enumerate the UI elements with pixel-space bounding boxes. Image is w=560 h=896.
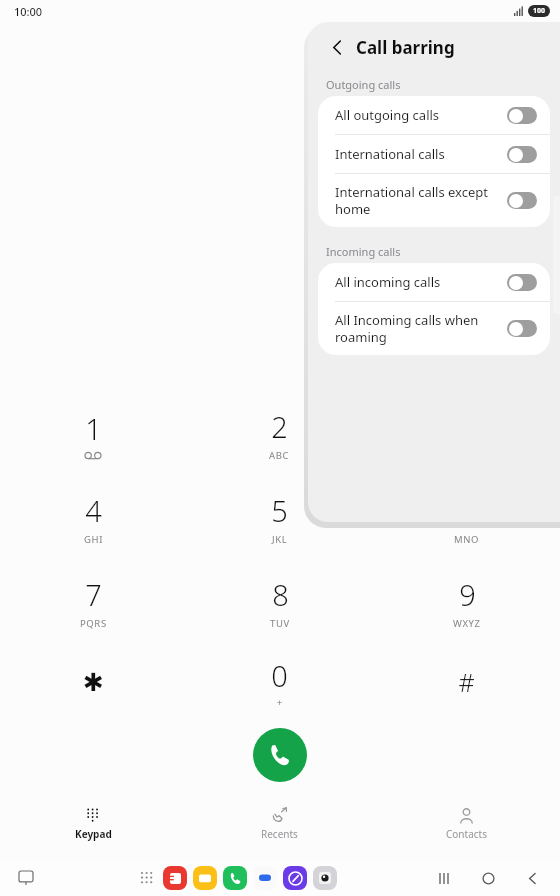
button[interactable]: Back — [510, 861, 554, 895]
button[interactable]: 8 — [186, 560, 373, 644]
button[interactable]: Recents — [186, 804, 373, 844]
button[interactable]: Toggle — [507, 107, 537, 124]
button[interactable]: Toggle — [507, 320, 537, 337]
button[interactable]: 4 — [0, 476, 186, 560]
staticText: + — [277, 696, 283, 708]
staticText: Incoming calls — [326, 244, 401, 259]
staticText: ABC — [269, 449, 290, 462]
button[interactable]: App — [163, 866, 187, 890]
staticText: 4 — [85, 491, 102, 530]
button[interactable]: All outgoing calls — [318, 96, 550, 134]
staticText: All incoming calls — [335, 273, 499, 291]
staticText: Contacts — [446, 827, 487, 841]
button[interactable]: Contacts — [373, 804, 560, 844]
button[interactable]: App — [283, 866, 307, 890]
staticText: Call barring — [356, 36, 455, 59]
staticText: Recents — [261, 827, 298, 841]
staticText: 6 — [459, 491, 476, 530]
button[interactable]: 6 — [373, 476, 560, 560]
staticText: WXYZ — [453, 617, 481, 630]
button[interactable]: Toggle — [507, 146, 537, 163]
staticText: ✱ — [83, 668, 104, 697]
staticText: International calls except home — [335, 183, 499, 218]
staticText: All Incoming calls when roaming — [335, 311, 499, 346]
staticText: MNO — [454, 533, 480, 546]
staticText: TUV — [270, 617, 290, 630]
staticText: GHI — [84, 533, 103, 546]
button[interactable]: ✱ — [0, 644, 186, 720]
button[interactable]: Toggle — [507, 274, 537, 291]
button[interactable]: Keypad — [0, 804, 186, 844]
staticText: 0 — [271, 656, 288, 695]
button[interactable]: International calls — [318, 135, 550, 173]
button[interactable]: 7 — [0, 560, 186, 644]
staticText: 2 — [271, 407, 288, 446]
button[interactable]: 9 — [373, 560, 560, 644]
staticText: 9 — [459, 575, 476, 614]
staticText: 5 — [271, 491, 288, 530]
button[interactable]: App — [253, 866, 277, 890]
button[interactable]: 0 — [186, 644, 373, 720]
staticText: 1 — [85, 409, 102, 448]
staticText: # — [458, 665, 475, 699]
button[interactable]: All Incoming calls when roaming — [318, 302, 550, 355]
staticText: 10:00 — [14, 4, 43, 19]
button[interactable]: Home — [466, 861, 510, 895]
staticText: International calls — [335, 145, 499, 163]
button[interactable]: 1 — [0, 392, 186, 476]
staticText: 7 — [85, 575, 102, 614]
staticText: 100 — [533, 6, 546, 16]
button[interactable]: Recent apps — [422, 861, 466, 895]
button[interactable]: Call — [253, 728, 307, 782]
button[interactable]: Toggle — [507, 192, 537, 209]
button[interactable]: DeX mode — [0, 860, 52, 896]
button[interactable]: # — [373, 644, 560, 720]
staticText: All outgoing calls — [335, 106, 499, 124]
staticText: JKL — [272, 533, 288, 546]
button[interactable]: Back — [324, 34, 350, 60]
staticText: Outgoing calls — [326, 77, 401, 92]
button[interactable]: 5 — [186, 476, 373, 560]
button[interactable]: App — [223, 866, 247, 890]
staticText: Keypad — [75, 827, 112, 841]
button[interactable]: 2 — [186, 392, 373, 476]
button[interactable]: Apps — [134, 865, 160, 891]
button[interactable]: App — [193, 866, 217, 890]
button[interactable]: International calls except home — [318, 174, 550, 227]
staticText: 8 — [272, 575, 289, 614]
button[interactable]: App — [313, 866, 337, 890]
button[interactable]: All incoming calls — [318, 263, 550, 301]
staticText: PQRS — [80, 617, 107, 630]
